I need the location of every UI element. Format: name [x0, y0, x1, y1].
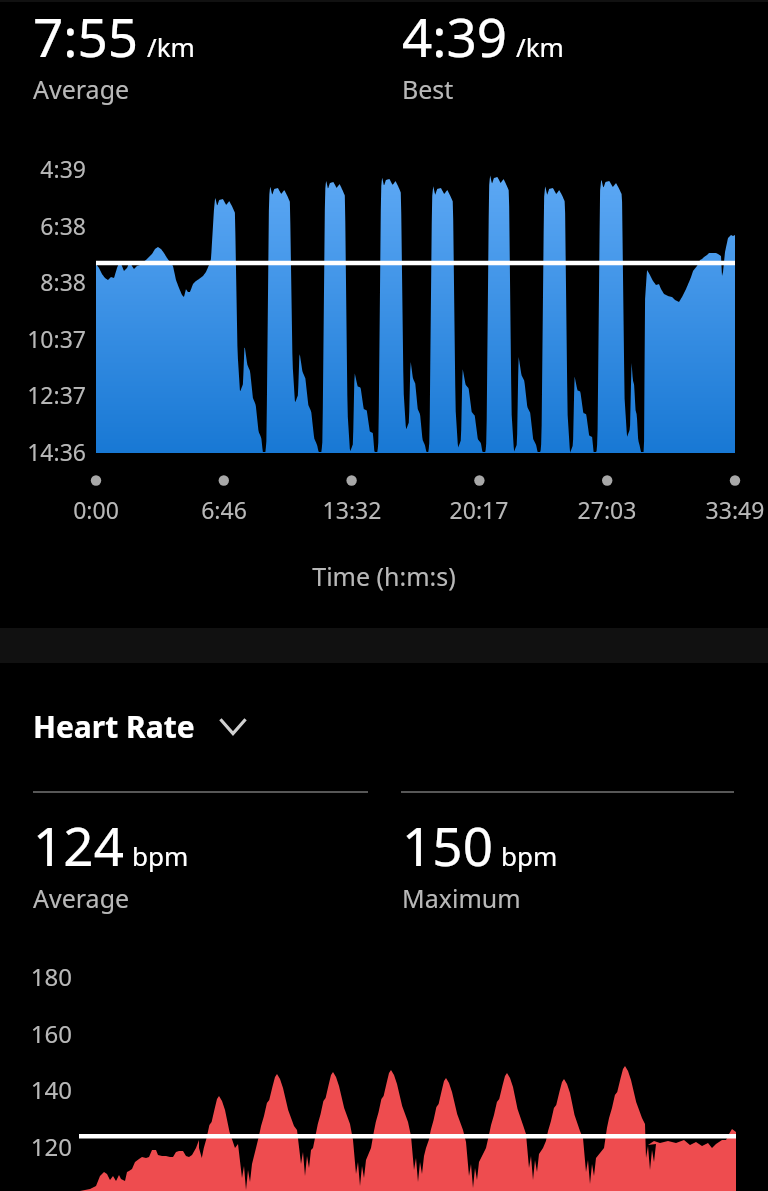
staticText: 14:36	[0, 436, 86, 467]
staticText: 10:37	[0, 323, 86, 354]
staticText: 13:32	[282, 494, 422, 525]
staticText: 7:55	[33, 0, 139, 72]
staticText: Average	[33, 881, 130, 915]
staticText: 4:39	[402, 0, 508, 72]
staticText: 0:00	[26, 494, 166, 525]
staticText: 124	[33, 809, 124, 881]
staticText: bpm	[132, 838, 189, 873]
staticText: 8:38	[0, 266, 86, 297]
staticText: Time (h:m:s)	[0, 559, 768, 593]
staticText: 33:49	[665, 494, 768, 525]
staticText: 20:17	[409, 494, 549, 525]
button[interactable]: 124	[33, 809, 402, 915]
button[interactable]: 7:55	[33, 0, 402, 106]
staticText: /km	[516, 29, 564, 64]
staticText: Best	[402, 72, 454, 106]
button[interactable]: 150	[402, 809, 558, 915]
other: Expand Heart Rate	[213, 707, 253, 747]
staticText: Heart Rate	[33, 706, 195, 747]
button[interactable]: Heart Rate	[33, 706, 253, 747]
button[interactable]: 4:39	[402, 0, 564, 106]
staticText: 12:37	[0, 379, 86, 410]
staticText: 180	[0, 960, 72, 993]
staticText: 160	[0, 1017, 72, 1050]
staticText: 4:39	[0, 153, 86, 184]
staticText: 140	[0, 1073, 72, 1106]
staticText: 120	[0, 1130, 72, 1163]
staticText: Maximum	[402, 881, 521, 915]
staticText: 6:38	[0, 210, 86, 241]
staticText: bpm	[501, 838, 558, 873]
staticText: 27:03	[537, 494, 677, 525]
staticText: /km	[147, 29, 195, 64]
staticText: 6:46	[154, 494, 294, 525]
staticText: 150	[402, 809, 493, 881]
staticText: Average	[33, 72, 130, 106]
